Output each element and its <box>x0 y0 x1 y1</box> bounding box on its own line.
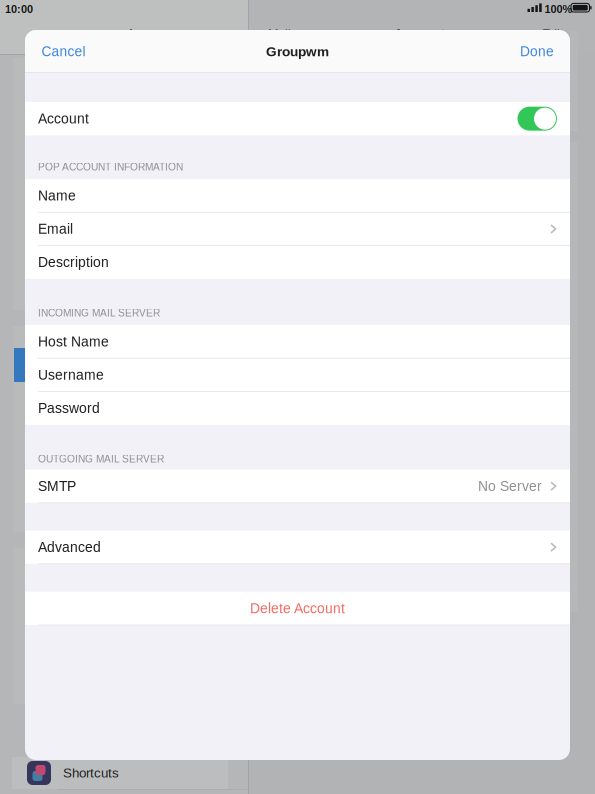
staticText: Username <box>38 367 104 383</box>
staticText: INCOMING MAIL SERVER <box>38 307 160 319</box>
staticText: 100% <box>544 3 572 15</box>
button[interactable]: Description <box>25 246 570 279</box>
staticText: Groupwm <box>266 44 329 59</box>
staticText: Account <box>38 111 89 126</box>
staticText: Password <box>38 400 100 416</box>
staticText: Email <box>38 221 73 237</box>
staticText: SMTP <box>38 478 76 494</box>
button[interactable]: Account <box>25 102 570 135</box>
staticText: Host Name <box>38 334 109 349</box>
button[interactable]: Advanced <box>25 530 570 564</box>
button[interactable]: Cancel <box>25 30 102 73</box>
staticText: Description <box>38 254 109 270</box>
staticText: Shortcuts <box>63 766 119 780</box>
button[interactable]: Host Name <box>25 325 570 358</box>
button[interactable]: Done <box>504 30 570 73</box>
button[interactable]: Username <box>25 358 570 392</box>
staticText: Settings <box>101 27 159 43</box>
staticText: Advanced <box>38 539 101 555</box>
staticText: Cancel <box>41 44 85 59</box>
button[interactable]: Name <box>25 179 570 212</box>
staticText: No Server <box>478 478 542 494</box>
staticText: Name <box>38 188 76 203</box>
staticText: Delete Account <box>250 601 345 616</box>
staticText: ‹ Mail <box>261 27 291 41</box>
staticText: 10:00 <box>5 3 33 15</box>
staticText: Edit <box>542 27 563 41</box>
button[interactable]: SMTP <box>25 469 570 503</box>
button[interactable]: Delete Account <box>25 592 570 625</box>
button[interactable]: Email <box>25 212 570 246</box>
staticText: Account <box>394 27 445 41</box>
staticText: OUTGOING MAIL SERVER <box>38 453 164 465</box>
staticText: Done <box>520 44 554 59</box>
button[interactable]: Password <box>25 392 570 425</box>
staticText: POP ACCOUNT INFORMATION <box>38 161 183 173</box>
